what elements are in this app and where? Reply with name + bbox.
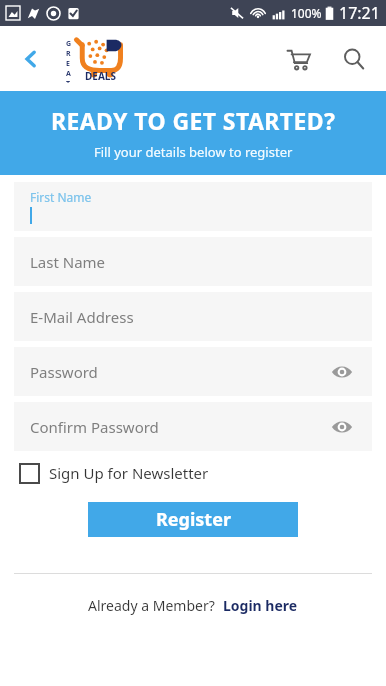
staticText: Password (30, 362, 98, 382)
button[interactable]: Confirm Password (14, 402, 372, 451)
staticText: READY TO GET STARTED? (51, 105, 336, 136)
staticText: DEALS (85, 69, 116, 83)
staticText: Confirm Password (30, 417, 159, 437)
button[interactable]: Register (88, 502, 298, 537)
staticText: Register (156, 507, 231, 532)
staticText: 17:21 (339, 2, 380, 24)
button[interactable]: Search (334, 39, 374, 79)
button[interactable]: Cart (278, 39, 318, 79)
button[interactable]: Back (14, 42, 48, 76)
staticText: E (66, 59, 70, 69)
staticText: Login here (223, 596, 298, 615)
button[interactable]: Login here (223, 596, 298, 615)
staticText: Fill your details below to register (94, 143, 293, 161)
staticText: Last Name (30, 252, 106, 272)
staticText: Sign Up for Newsletter (49, 463, 209, 483)
staticText: R (66, 49, 71, 59)
staticText: T (66, 79, 71, 83)
staticText: Already a Member? (88, 596, 215, 615)
button[interactable]: Sign Up for Newsletter (20, 463, 209, 483)
staticText: First Name (30, 189, 92, 205)
button[interactable]: First Name (14, 182, 372, 231)
staticText: G (66, 39, 72, 49)
button[interactable]: Show password (328, 413, 356, 441)
button[interactable]: E-Mail Address (14, 292, 372, 341)
staticText: A (66, 69, 71, 79)
button[interactable]: Password (14, 347, 372, 396)
button[interactable]: Last Name (14, 237, 372, 286)
staticText: 100% (291, 5, 322, 21)
button[interactable]: Show password (328, 358, 356, 386)
staticText: E-Mail Address (30, 307, 134, 327)
